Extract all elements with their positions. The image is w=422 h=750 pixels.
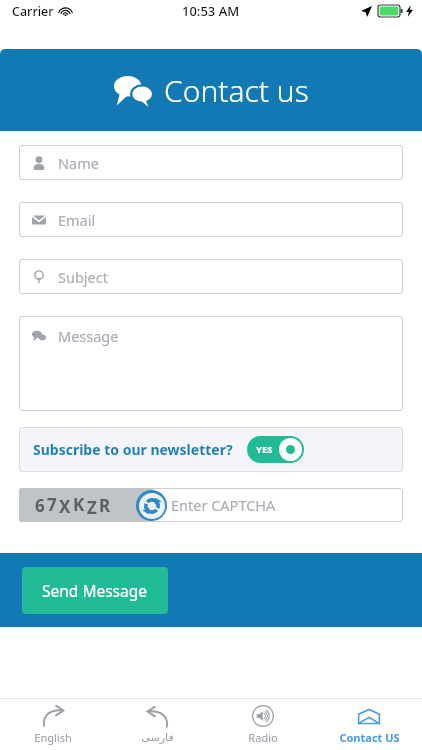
button[interactable]: Subscribe to our newsletter?: [19, 427, 403, 472]
button[interactable]: English: [0, 699, 105, 750]
staticText: English: [34, 730, 72, 745]
staticText: 6: [35, 494, 45, 517]
staticText: Message: [58, 326, 119, 346]
staticText: Z: [87, 496, 97, 519]
button[interactable]: Enter CAPTCHA: [19, 488, 403, 522]
staticText: 10:53 AM: [182, 2, 240, 20]
staticText: Send Message: [42, 580, 148, 601]
button[interactable]: Contact US: [316, 699, 422, 750]
staticText: Contact us: [164, 70, 309, 111]
staticText: R: [99, 494, 111, 517]
button[interactable]: فارسی: [105, 699, 210, 750]
staticText: X: [59, 495, 71, 518]
staticText: Radio: [248, 730, 278, 745]
button[interactable]: Subscribe toggle, on: [247, 436, 304, 463]
button[interactable]: Radio: [210, 699, 316, 750]
staticText: Subscribe to our newsletter?: [33, 440, 233, 459]
button[interactable]: Name: [19, 145, 403, 180]
button[interactable]: Subject: [19, 259, 403, 294]
staticText: Email: [58, 210, 96, 230]
staticText: K: [73, 493, 85, 516]
button[interactable]: Email: [19, 202, 403, 237]
staticText: Carrier: [12, 3, 54, 20]
staticText: فارسی: [141, 731, 174, 744]
button[interactable]: Send Message: [22, 567, 168, 614]
staticText: Contact US: [339, 730, 400, 745]
button[interactable]: Message: [19, 316, 403, 411]
staticText: Enter CAPTCHA: [171, 495, 276, 515]
staticText: YES: [256, 443, 273, 456]
button[interactable]: Refresh CAPTCHA: [136, 490, 167, 521]
staticText: Name: [58, 153, 99, 173]
staticText: 7: [47, 493, 57, 516]
staticText: Subject: [58, 267, 108, 287]
